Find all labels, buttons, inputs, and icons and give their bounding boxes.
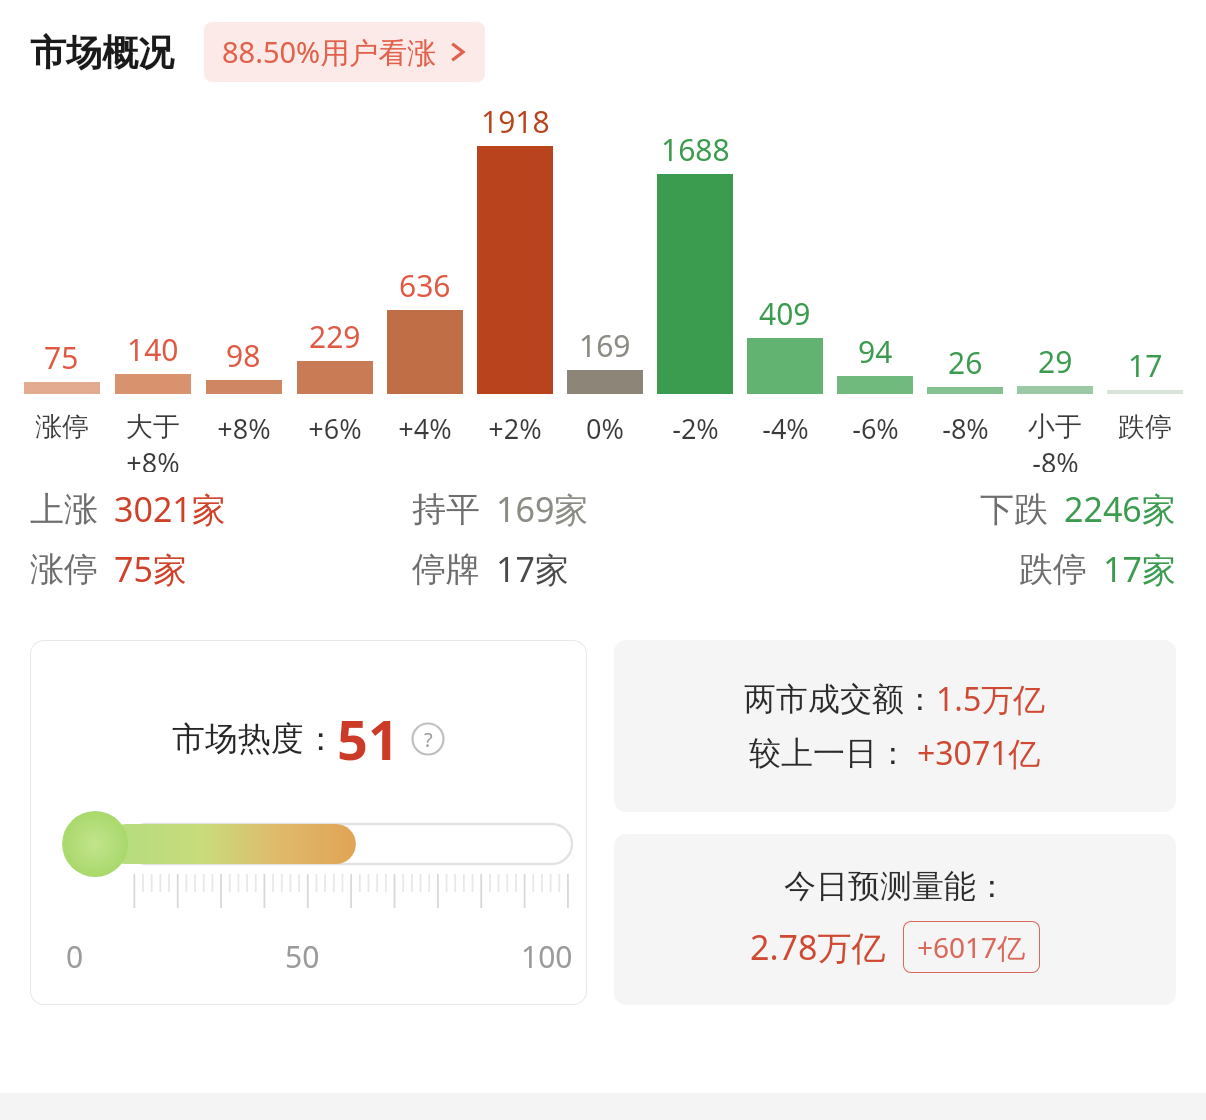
- staticText: -8%: [942, 410, 989, 447]
- staticText: 75家: [114, 546, 187, 592]
- button[interactable]: 两市成交额：: [614, 640, 1176, 812]
- staticText: 636: [399, 265, 451, 306]
- staticText: 169: [579, 325, 631, 366]
- staticText: 小于: [1028, 410, 1082, 444]
- staticText: 两市成交额：: [744, 679, 936, 719]
- staticText: 1918: [481, 101, 550, 142]
- staticText: 75: [44, 337, 79, 378]
- button[interactable]: 今日预测量能：: [614, 834, 1176, 1005]
- staticText: 98: [226, 335, 261, 376]
- staticText: 持平: [412, 488, 480, 531]
- staticText: -8%: [1032, 444, 1079, 472]
- staticText: 下跌: [980, 488, 1048, 531]
- staticText: 0: [66, 936, 84, 977]
- staticText: 1688: [661, 129, 730, 170]
- staticText: +6%: [308, 410, 362, 447]
- staticText: +8%: [126, 444, 180, 472]
- staticText: 51: [337, 702, 399, 776]
- staticText: 2246家: [1064, 486, 1176, 532]
- staticText: +3071亿: [917, 731, 1041, 775]
- staticText: 上涨: [30, 488, 98, 531]
- staticText: 94: [858, 331, 893, 372]
- staticText: -2%: [672, 410, 719, 447]
- staticText: 169家: [496, 486, 589, 532]
- staticText: 17: [1128, 345, 1163, 386]
- staticText: 大于: [126, 410, 180, 444]
- button[interactable]: 帮助说明: [411, 722, 445, 756]
- button[interactable]: 市场热度：: [30, 640, 587, 1005]
- staticText: 0%: [586, 410, 624, 447]
- staticText: 涨停: [35, 410, 89, 444]
- staticText: 今日预测量能：: [784, 866, 1008, 906]
- staticText: 市场概况: [30, 30, 174, 75]
- staticText: 17家: [1103, 546, 1176, 592]
- staticText: 较上一日：: [749, 733, 909, 773]
- staticText: 停牌: [412, 548, 480, 591]
- staticText: 市场热度：: [172, 718, 337, 760]
- button[interactable]: 88.50%用户看涨: [204, 22, 485, 82]
- staticText: 50: [285, 936, 320, 977]
- staticText: 1.5万亿: [936, 677, 1046, 721]
- staticText: +8%: [217, 410, 271, 447]
- staticText: 140: [127, 329, 179, 370]
- staticText: -6%: [852, 410, 899, 447]
- staticText: 29: [1038, 341, 1073, 382]
- staticText: +6017亿: [917, 928, 1026, 966]
- staticText: 409: [759, 293, 811, 334]
- staticText: 17家: [496, 546, 569, 592]
- staticText: 100: [521, 936, 573, 977]
- staticText: 跌停: [1118, 410, 1172, 444]
- staticText: 26: [948, 342, 983, 383]
- staticText: ?: [424, 726, 433, 753]
- staticText: 3021家: [114, 486, 226, 532]
- staticText: 跌停: [1019, 548, 1087, 591]
- staticText: +4%: [398, 410, 452, 447]
- staticText: 2.78万亿: [750, 924, 886, 970]
- staticText: +2%: [488, 410, 542, 447]
- staticText: -4%: [762, 410, 809, 447]
- staticText: 88.50%用户看涨: [222, 32, 437, 72]
- staticText: 229: [309, 316, 361, 357]
- staticText: 涨停: [30, 548, 98, 591]
